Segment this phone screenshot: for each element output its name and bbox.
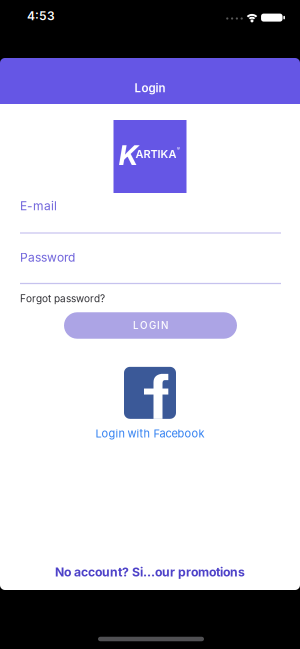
button[interactable]: Login with Facebook <box>95 367 204 440</box>
staticText: L O G I N <box>133 320 168 331</box>
staticText: Login with Facebook <box>95 427 204 440</box>
staticText: K <box>118 138 138 172</box>
button[interactable]: No account? Si...our promotions <box>55 565 245 579</box>
staticText: ® <box>177 146 180 152</box>
button[interactable]: Forgot password? <box>20 292 105 305</box>
staticText: No account? Si...our promotions <box>55 565 245 579</box>
button[interactable]: L O G I N <box>64 312 237 339</box>
staticText: 4:53 <box>27 9 55 23</box>
staticText: Login <box>134 81 165 95</box>
staticText: Password <box>20 250 75 265</box>
staticText: Forgot password? <box>20 292 105 305</box>
staticText: ARTIKA <box>135 147 176 161</box>
staticText: E-mail <box>20 199 57 213</box>
